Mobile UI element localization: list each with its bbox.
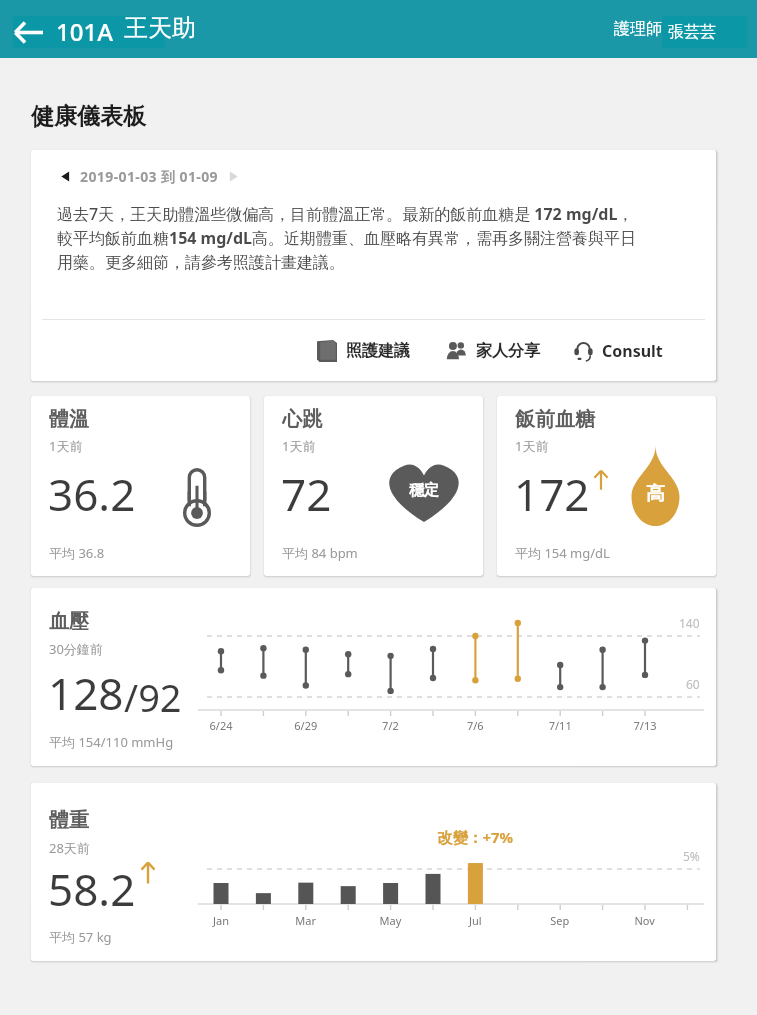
staticText: 穩定 [409, 481, 439, 500]
staticText: 體重 [49, 808, 89, 833]
staticText: 平均 57 kg [49, 928, 112, 946]
button[interactable]: Back to 101A [13, 16, 165, 48]
staticText: 心跳 [282, 407, 322, 432]
staticText: 128 [48, 663, 124, 723]
staticText: 101A [56, 15, 113, 47]
staticText: 護理師 [614, 19, 662, 39]
other: Previous week [59, 170, 72, 183]
staticText: 58.2 [48, 859, 136, 919]
staticText: 172 [514, 464, 590, 524]
staticText: 家人分享 [476, 341, 540, 361]
button[interactable]: 體溫 [31, 396, 250, 576]
staticText: 2019-01-03 到 01-09 [80, 167, 219, 186]
staticText: 平均 36.8 [49, 544, 105, 562]
staticText: 28天前 [49, 839, 90, 857]
staticText: Consult [602, 340, 663, 362]
staticText: 健康儀表板 [31, 102, 146, 131]
staticText: 1天前 [515, 437, 549, 455]
staticText: 過去7天，王天助體溫些微偏高，目前體溫正常。最新的飯前血糖是 172 mg/dL… [57, 203, 637, 272]
button[interactable]: 家人分享 [441, 337, 544, 365]
button[interactable]: 血壓 [31, 588, 716, 766]
staticText: 72 [281, 464, 332, 524]
staticText: 36.2 [48, 464, 136, 524]
staticText: 1天前 [282, 437, 316, 455]
staticText: 體溫 [49, 407, 89, 432]
other: Next week [227, 170, 240, 183]
button[interactable]: Consult [570, 336, 667, 366]
staticText: /92 [124, 671, 182, 723]
staticText: 血壓 [49, 609, 89, 634]
button[interactable]: 飯前血糖 [497, 396, 716, 576]
button[interactable]: 照護建議 [313, 336, 414, 366]
staticText: 飯前血糖 [515, 407, 595, 432]
staticText: 平均 84 bpm [282, 544, 358, 562]
staticText: 30分鐘前 [49, 640, 103, 658]
staticText: 張芸芸 [668, 22, 716, 42]
staticText: 照護建議 [346, 341, 410, 361]
button[interactable]: 張芸芸 [662, 16, 747, 48]
button[interactable]: 體重 [31, 783, 716, 961]
staticText: 平均 154 mg/dL [515, 544, 610, 562]
staticText: 1天前 [49, 437, 83, 455]
staticText: 平均 154/110 mmHg [49, 733, 174, 751]
staticText: 高 [646, 482, 665, 506]
button[interactable]: 心跳 [264, 396, 483, 576]
staticText: 王天助 [124, 13, 196, 43]
